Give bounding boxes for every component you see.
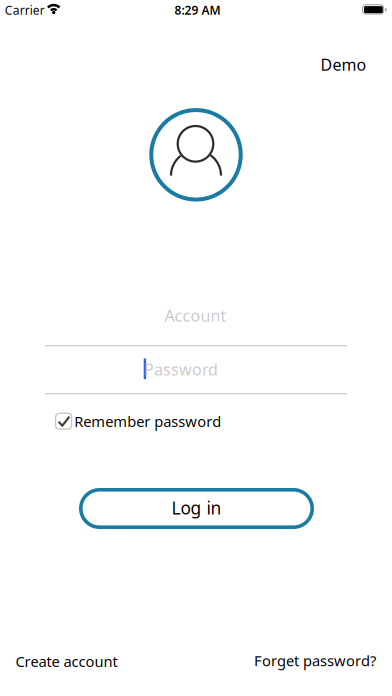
button[interactable]: Create account	[16, 652, 118, 671]
staticText: Log in	[171, 496, 221, 519]
staticText: Demo	[320, 54, 366, 75]
staticText: 8:29 AM	[175, 2, 221, 18]
staticText: Forget password?	[254, 651, 376, 670]
staticText: Remember password	[74, 411, 221, 431]
button[interactable]: Forget password?	[254, 651, 376, 670]
button[interactable]: Remember password	[55, 411, 221, 431]
staticText: Account	[164, 305, 226, 326]
staticText: Create account	[16, 652, 118, 671]
staticText: Password	[144, 359, 218, 380]
staticText: Carrier	[5, 2, 45, 18]
button[interactable]: Demo	[320, 54, 366, 75]
button[interactable]: Log in	[79, 488, 314, 529]
